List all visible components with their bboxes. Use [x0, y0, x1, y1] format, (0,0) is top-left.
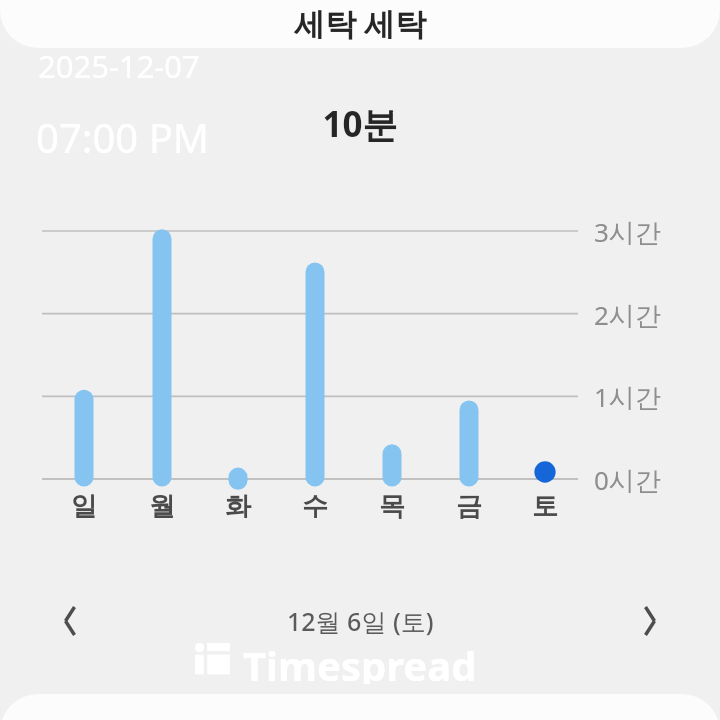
- staticText: 3시간: [594, 214, 661, 250]
- staticText: 07:00 PM: [36, 110, 210, 164]
- staticText: 월: [149, 490, 175, 523]
- staticText: 0시간: [594, 462, 661, 498]
- staticText: 금: [456, 490, 482, 523]
- staticText: 세탁 세탁: [294, 2, 427, 44]
- staticText: 수: [302, 490, 328, 523]
- staticText: 2025-12-07: [38, 45, 200, 87]
- staticText: 2시간: [594, 297, 661, 333]
- staticText: 목: [379, 490, 405, 523]
- staticText: Timespread: [243, 638, 477, 684]
- staticText: 화: [225, 490, 251, 523]
- staticText: 12월 6일 (토): [287, 604, 434, 638]
- button[interactable]: 세탁 세탁: [0, 0, 720, 48]
- staticText: 10분: [0, 100, 720, 148]
- staticText: 토: [532, 490, 558, 523]
- staticText: 1시간: [594, 379, 661, 415]
- button[interactable]: Previous day: [46, 597, 94, 645]
- button[interactable]: Next day: [626, 597, 674, 645]
- staticText: 일: [71, 490, 97, 523]
